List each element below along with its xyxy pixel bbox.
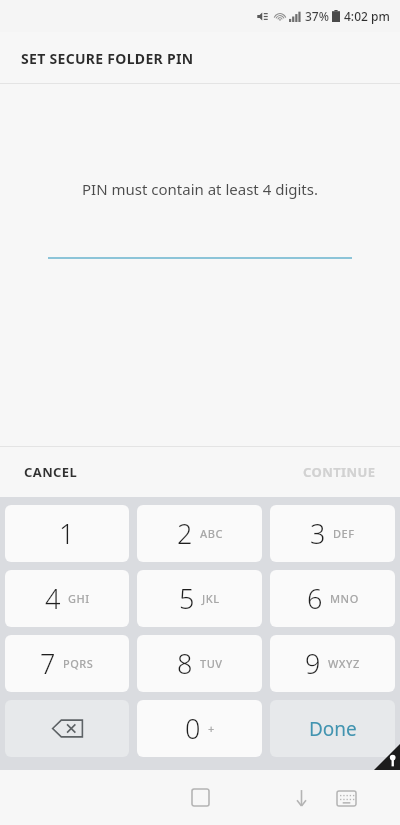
staticText: 1 bbox=[59, 515, 75, 552]
staticText: 8 bbox=[177, 645, 193, 682]
staticText: 3 bbox=[310, 515, 326, 552]
staticText: TUV bbox=[200, 656, 223, 671]
button[interactable]: 1 bbox=[5, 505, 129, 562]
staticText: 5 bbox=[179, 580, 195, 617]
button[interactable]: 4 bbox=[5, 570, 129, 627]
button[interactable]: 8 bbox=[137, 635, 262, 692]
staticText: 4:02 pm bbox=[344, 8, 390, 24]
staticText: 37% bbox=[305, 8, 329, 24]
staticText: PQRS bbox=[63, 656, 94, 671]
staticText: CONTINUE bbox=[303, 463, 376, 481]
staticText: CANCEL bbox=[24, 463, 78, 481]
button[interactable]: 3 bbox=[270, 505, 395, 562]
staticText: 7 bbox=[40, 645, 56, 682]
staticText: 4 bbox=[45, 580, 61, 617]
button[interactable]: 6 bbox=[270, 570, 395, 627]
button[interactable]: 9 bbox=[270, 635, 395, 692]
button[interactable]: Recents bbox=[178, 775, 223, 820]
button[interactable]: 7 bbox=[5, 635, 129, 692]
staticText: GHI bbox=[68, 591, 90, 606]
staticText: 2 bbox=[177, 515, 193, 552]
button[interactable]: CANCEL bbox=[0, 451, 102, 493]
button[interactable]: Hide keyboard bbox=[284, 779, 319, 817]
staticText: SET SECURE FOLDER PIN bbox=[21, 49, 194, 68]
button[interactable]: 5 bbox=[137, 570, 262, 627]
staticText: WXYZ bbox=[328, 656, 360, 671]
staticText: ABC bbox=[200, 526, 223, 541]
staticText: 0 bbox=[185, 710, 201, 747]
staticText: DEF bbox=[333, 526, 355, 541]
staticText: PIN must contain at least 4 digits. bbox=[82, 179, 318, 199]
button[interactable]: Change keyboard bbox=[327, 781, 366, 816]
button[interactable]: CONTINUE bbox=[279, 451, 400, 493]
staticText: 9 bbox=[305, 645, 321, 682]
button[interactable]: 2 bbox=[137, 505, 262, 562]
staticText: MNO bbox=[330, 591, 359, 606]
button[interactable]: Done bbox=[270, 700, 395, 757]
staticText: + bbox=[208, 721, 215, 736]
staticText: JKL bbox=[202, 591, 220, 606]
button[interactable]: 0 bbox=[137, 700, 262, 757]
button[interactable]: Backspace bbox=[5, 700, 129, 757]
staticText: Done bbox=[309, 716, 357, 742]
staticText: 6 bbox=[307, 580, 323, 617]
